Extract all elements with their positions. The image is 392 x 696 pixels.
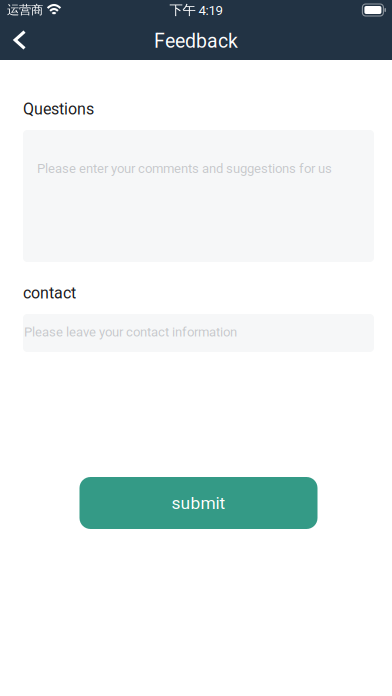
staticText: Please leave your contact information: [24, 324, 237, 340]
button[interactable]: submit: [79, 477, 317, 529]
button[interactable]: Back: [0, 20, 40, 60]
staticText: Questions: [23, 100, 94, 118]
button[interactable]: Please leave your contact information: [23, 314, 374, 352]
staticText: contact: [23, 284, 76, 302]
button[interactable]: Please enter your comments and suggestio…: [23, 130, 374, 262]
staticText: Feedback: [154, 30, 238, 52]
staticText: 运营商: [7, 2, 43, 18]
staticText: submit: [171, 493, 225, 513]
staticText: 下午 4:19: [169, 2, 222, 18]
staticText: Please enter your comments and suggestio…: [37, 161, 332, 176]
